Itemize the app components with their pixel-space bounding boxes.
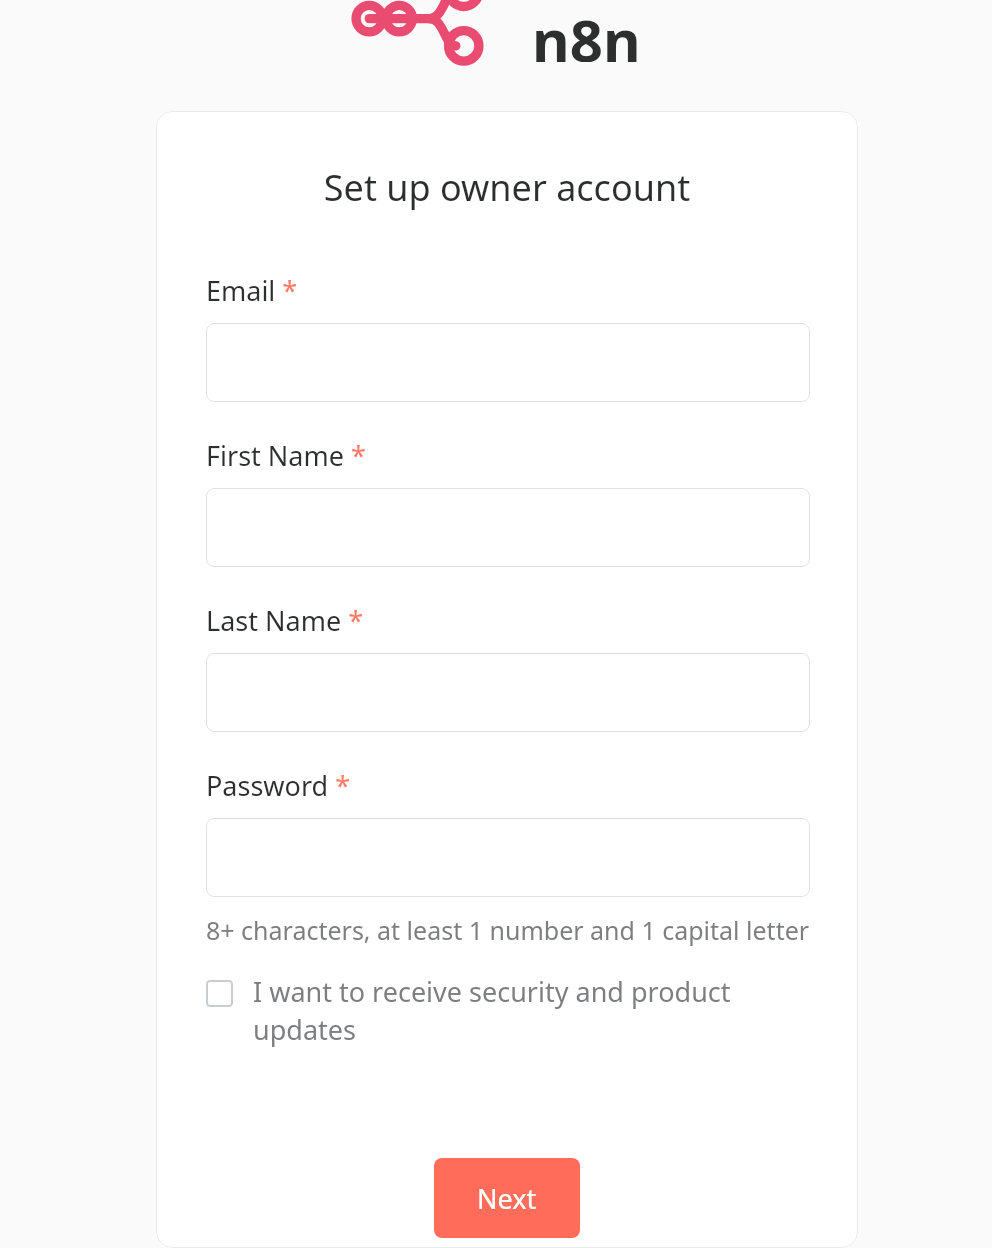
- staticText: n8n: [532, 0, 641, 62]
- staticText: First Name *: [206, 437, 366, 474]
- staticText: Email *: [206, 272, 298, 309]
- staticText: Last Name *: [206, 602, 364, 639]
- button[interactable]: Text field: [206, 488, 810, 567]
- staticText: I want to receive security and product u…: [253, 973, 773, 1048]
- staticText: Set up owner account: [156, 163, 858, 212]
- button[interactable]: Text field: [206, 818, 810, 897]
- button[interactable]: Text field: [206, 323, 810, 402]
- staticText: Next: [477, 1180, 537, 1217]
- staticText: Password *: [206, 767, 351, 804]
- staticText: 8+ characters, at least 1 number and 1 c…: [206, 913, 810, 947]
- button[interactable]: Text field: [206, 653, 810, 732]
- button[interactable]: I want to receive security and product u…: [206, 973, 773, 1048]
- button[interactable]: Next: [434, 1158, 580, 1238]
